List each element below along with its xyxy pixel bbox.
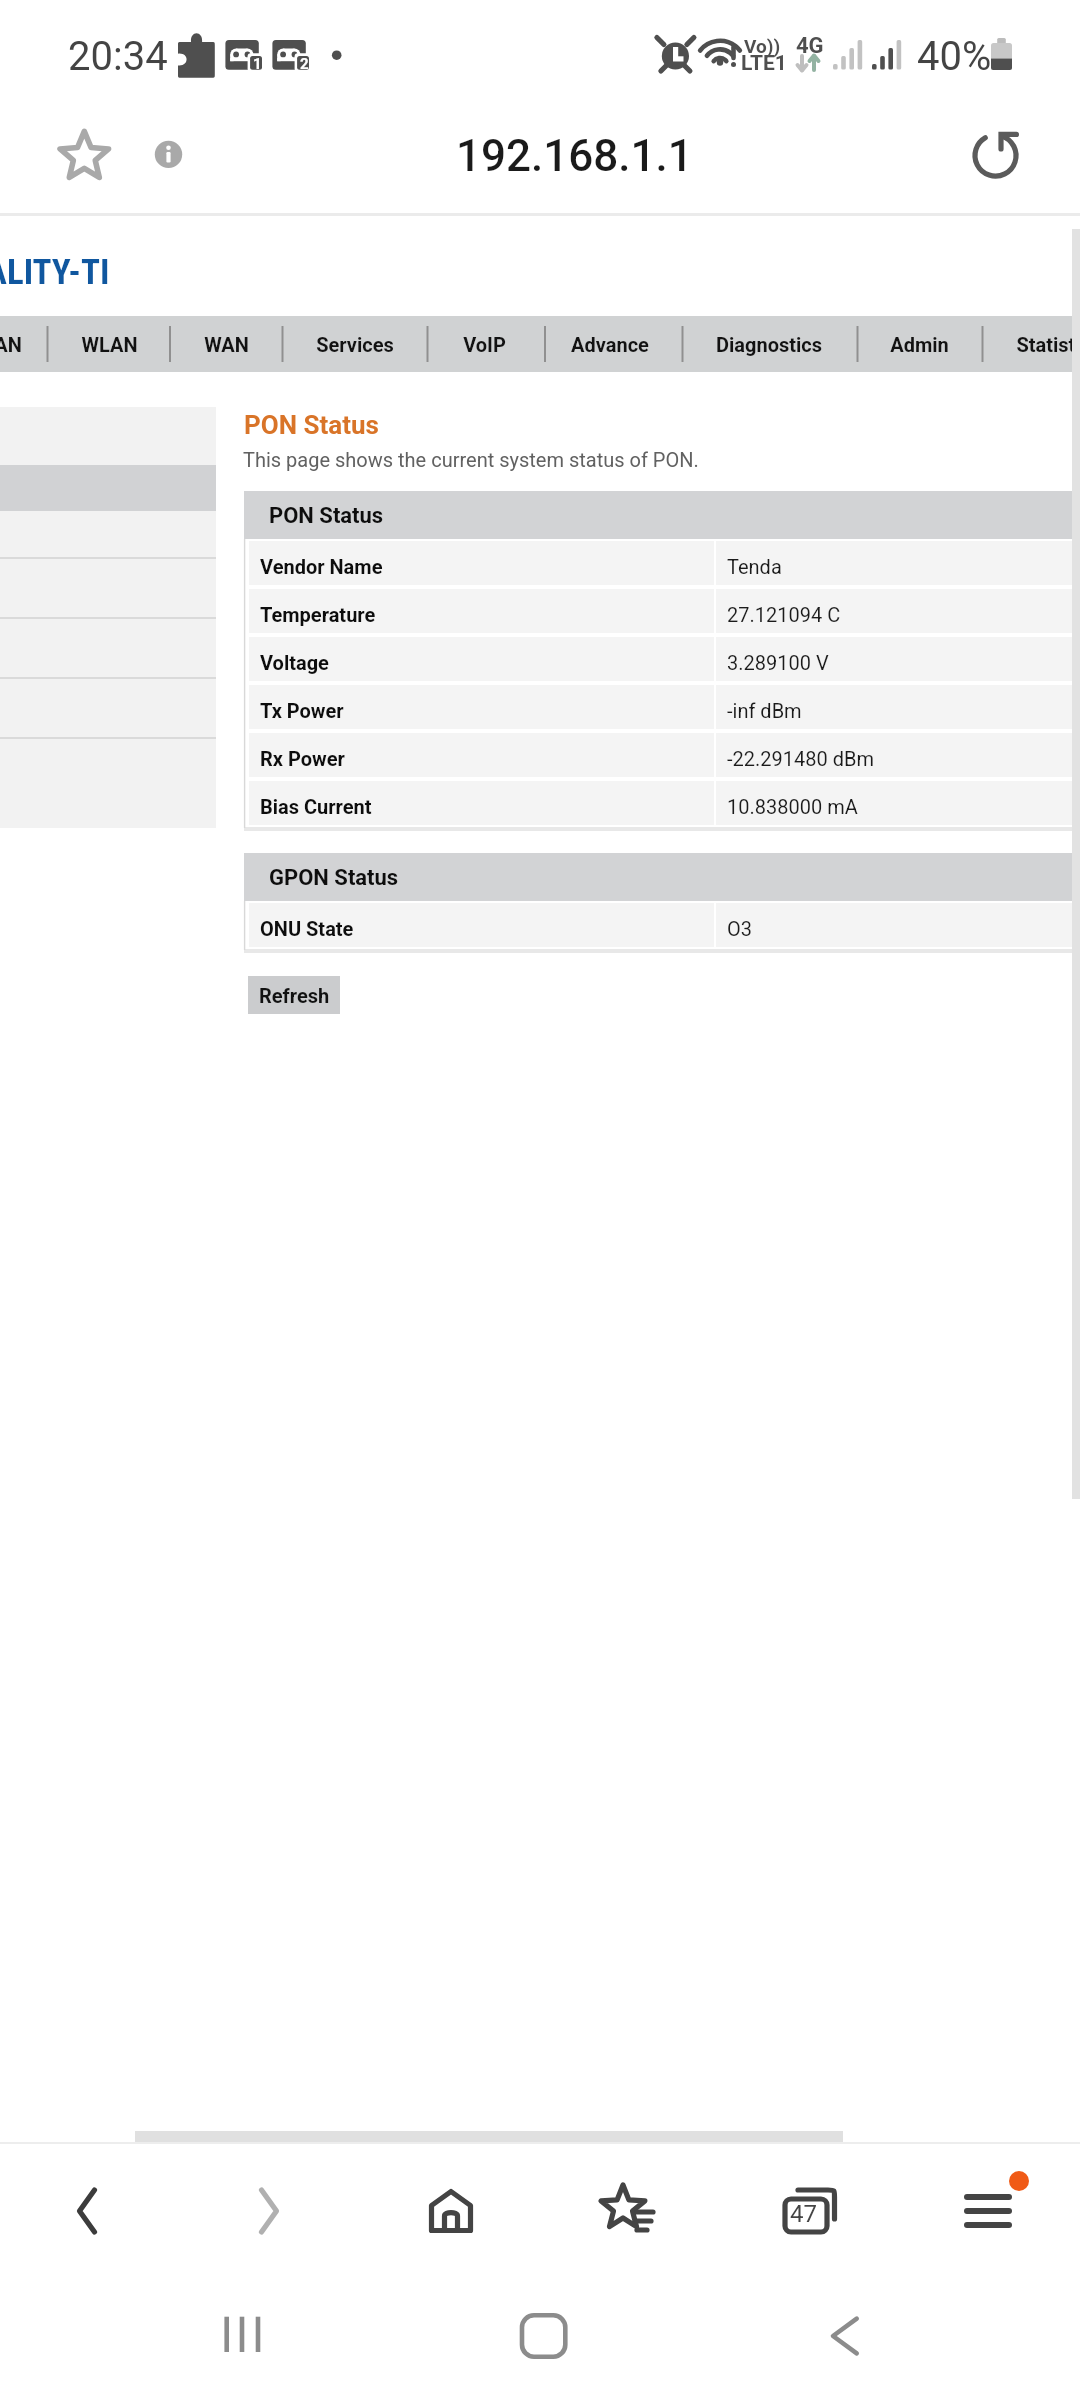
staticText: WLAN	[81, 333, 138, 356]
staticText: PON Status	[244, 410, 379, 440]
staticText: ONU State	[260, 917, 354, 940]
button[interactable]: Home	[379, 2149, 523, 2273]
staticText: 2	[300, 55, 309, 73]
staticText: Admin	[890, 333, 949, 356]
button[interactable]: Back	[16, 2149, 160, 2273]
staticText: Statisti	[1016, 333, 1080, 356]
staticText: -inf dBm	[727, 699, 802, 722]
staticText: 3.289100 V	[727, 651, 829, 674]
button[interactable]: Advance	[520, 316, 700, 372]
staticText: 27.121094 C	[727, 603, 841, 626]
staticText: GPON Status	[269, 865, 399, 891]
button[interactable]: WAN	[136, 316, 316, 372]
staticText: VoIP	[463, 333, 506, 356]
staticText: 192.168.1.1	[456, 130, 693, 182]
staticText: Refresh	[259, 984, 330, 1007]
staticText: 1	[253, 55, 262, 73]
staticText: Tx Power	[260, 699, 344, 722]
staticText: Advance	[571, 333, 649, 356]
button[interactable]: Recents	[182, 2274, 302, 2394]
button[interactable]: Diagnostics	[679, 316, 859, 372]
button[interactable]: Tabs	[734, 2149, 878, 2273]
button[interactable]: AN	[0, 316, 98, 372]
staticText: AN	[0, 333, 22, 356]
button[interactable]: Admin	[829, 316, 1009, 372]
staticText: LTE1	[741, 51, 787, 76]
staticText: O3	[727, 917, 752, 940]
button[interactable]: Back	[784, 2274, 904, 2394]
button[interactable]: Menu	[916, 2149, 1060, 2273]
staticText: Vendor Name	[260, 555, 383, 578]
button[interactable]: Refresh	[937, 110, 1021, 194]
staticText: 10.838000 mA	[727, 795, 858, 818]
staticText: 40%	[917, 33, 992, 80]
staticText: 4G	[796, 33, 824, 59]
staticText: Diagnostics	[716, 333, 822, 356]
staticText: -22.291480 dBm	[727, 747, 874, 770]
staticText: Temperature	[260, 603, 376, 626]
button[interactable]: Services	[265, 316, 445, 372]
staticText: Services	[316, 333, 394, 356]
button[interactable]: Forward	[196, 2149, 340, 2273]
button[interactable]: VoIP	[394, 316, 574, 372]
button[interactable]: Refresh	[248, 976, 340, 1014]
button[interactable]: Statisti	[958, 316, 1080, 372]
button[interactable]: Home	[484, 2274, 604, 2394]
staticText: Vo))	[744, 35, 781, 57]
staticText: PON Status	[269, 503, 384, 529]
staticText: Bias Current	[260, 795, 372, 818]
button[interactable]: WLAN	[19, 316, 199, 372]
staticText: 20:34	[68, 33, 168, 80]
staticText: 47	[790, 2200, 817, 2228]
staticText: This page shows the current system statu…	[243, 448, 699, 471]
staticText: Voltage	[260, 651, 329, 674]
staticText: Tenda	[727, 555, 782, 578]
staticText: WAN	[204, 333, 249, 356]
staticText: ALITY-TI	[0, 252, 110, 293]
button[interactable]: Bookmarks	[556, 2149, 700, 2273]
staticText: Rx Power	[260, 747, 345, 770]
button[interactable]: Page info	[138, 130, 200, 192]
button[interactable]: Bookmark	[42, 118, 126, 202]
